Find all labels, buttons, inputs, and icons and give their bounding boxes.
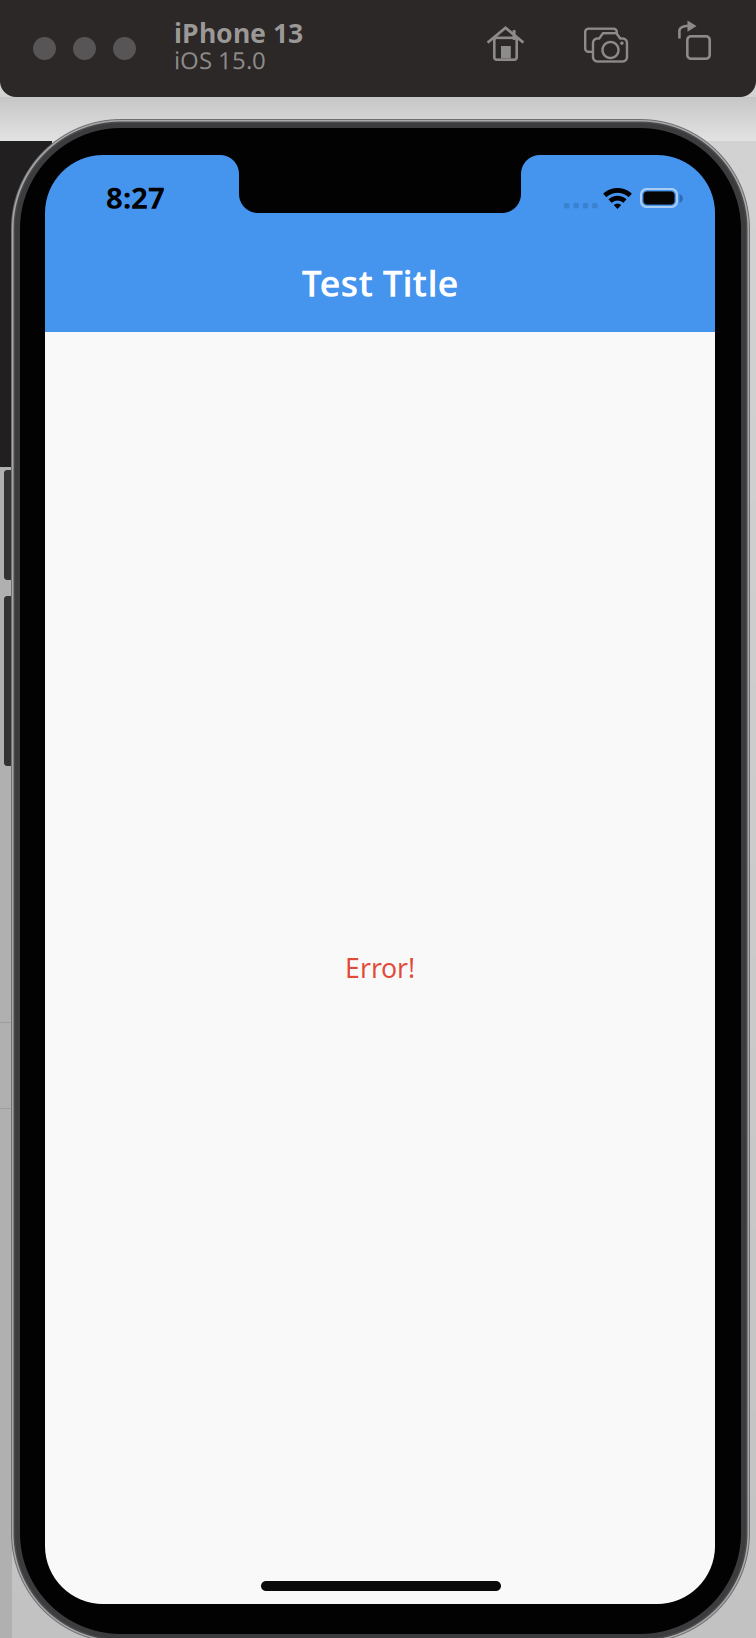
button[interactable]: Record Screen bbox=[678, 21, 714, 63]
staticText: iOS 15.0 bbox=[174, 44, 266, 76]
button[interactable]: Close bbox=[33, 37, 56, 60]
staticText: Error! bbox=[345, 950, 415, 985]
button[interactable]: Zoom bbox=[113, 37, 136, 60]
button[interactable]: Minimize bbox=[73, 37, 96, 60]
button[interactable]: Screenshot bbox=[584, 27, 630, 63]
button[interactable]: Home bbox=[486, 26, 526, 62]
staticText: iPhone 13 bbox=[174, 15, 303, 50]
staticText: Test Title bbox=[301, 259, 458, 307]
staticText: 8:27 bbox=[106, 178, 165, 217]
